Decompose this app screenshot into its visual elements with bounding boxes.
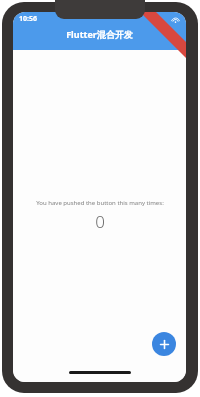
staticText: 0 [95,210,105,233]
staticText: You have pushed the button this many tim… [36,199,164,207]
staticText: Flutter混合开发 [66,28,133,40]
button[interactable]: Increment [152,332,176,356]
staticText: 10:56 [19,14,37,24]
